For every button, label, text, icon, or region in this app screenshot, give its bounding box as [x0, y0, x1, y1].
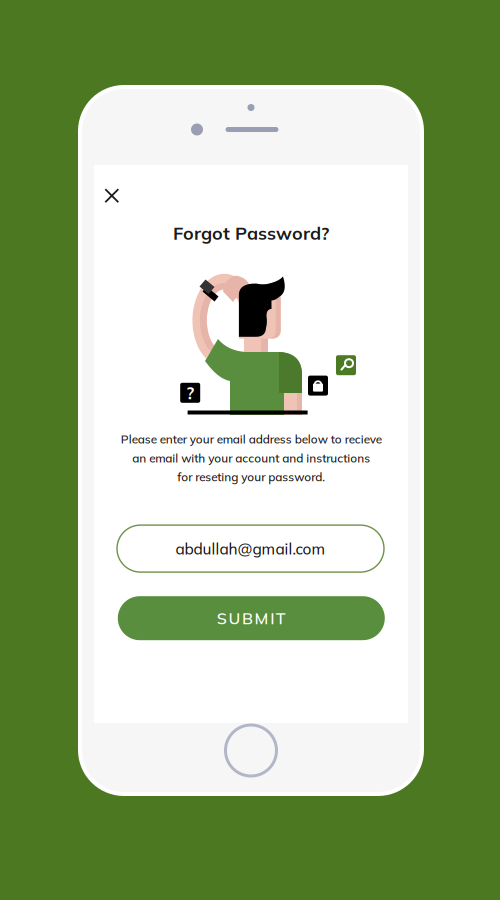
button[interactable]: SUBMIT	[118, 596, 385, 640]
staticText: Please enter your email address below to…	[120, 432, 381, 484]
staticText: ?	[186, 382, 194, 404]
staticText: abdullah@gmail.com	[175, 539, 325, 558]
button[interactable]: Close	[99, 183, 124, 208]
staticText: SUBMIT	[217, 608, 286, 628]
staticText: Forgot Password?	[173, 222, 329, 244]
button[interactable]: abdullah@gmail.com	[117, 525, 384, 572]
